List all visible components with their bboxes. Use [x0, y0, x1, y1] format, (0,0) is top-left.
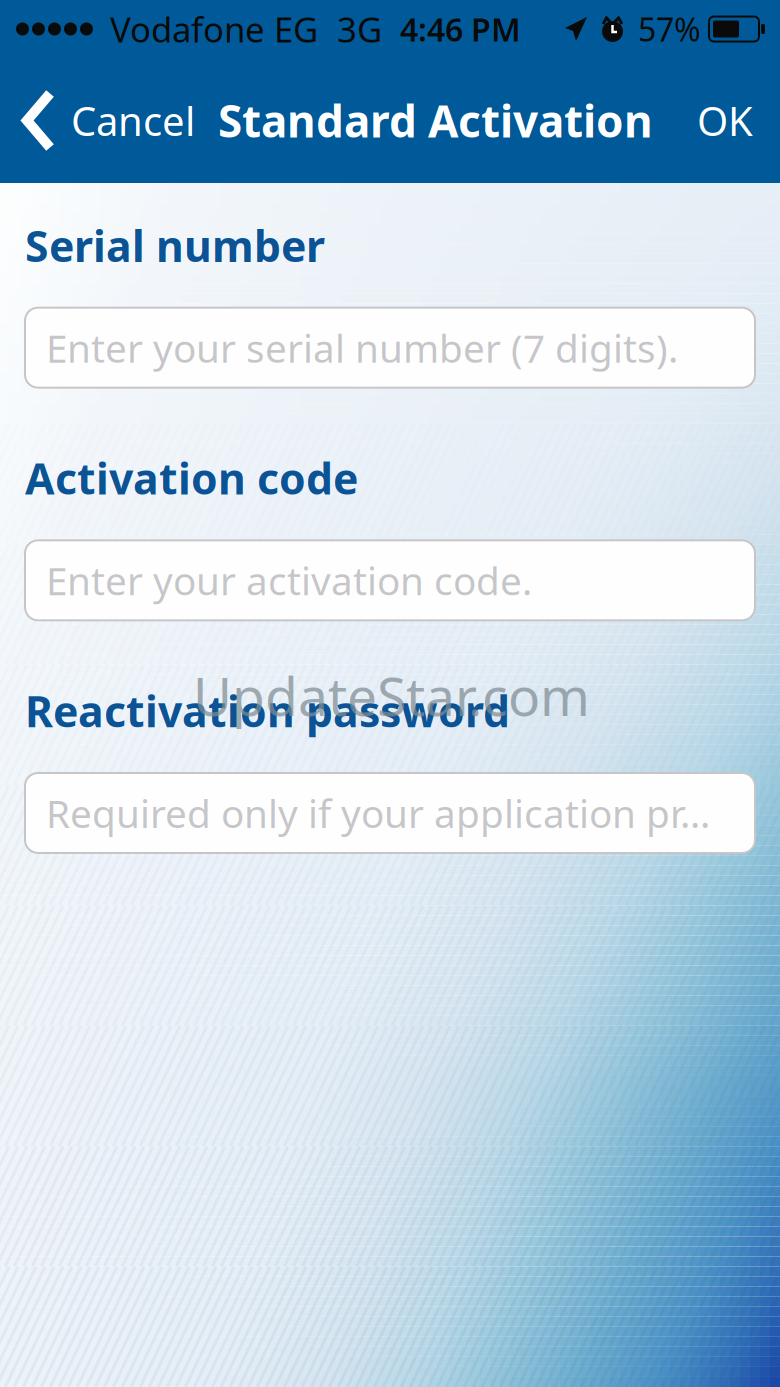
- staticText: Vodafone EG: [110, 6, 318, 52]
- staticText: Reactivation password: [25, 682, 510, 739]
- staticText: Activation code: [25, 450, 358, 506]
- staticText: UpdateStar.com: [193, 660, 590, 731]
- staticText: 57%: [638, 8, 701, 50]
- staticText: 3G: [337, 6, 382, 52]
- staticText: Standard Activation: [218, 91, 653, 150]
- button[interactable]: Enter your activation code.: [25, 540, 755, 620]
- button[interactable]: Enter your serial number (7 digits).: [25, 308, 755, 388]
- button[interactable]: Cancel: [0, 58, 205, 183]
- staticText: OK: [697, 94, 753, 147]
- staticText: Required only if your application pr...: [46, 787, 710, 839]
- button[interactable]: OK: [670, 58, 780, 183]
- staticText: Enter your serial number (7 digits).: [46, 322, 678, 373]
- staticText: Enter your activation code.: [46, 555, 532, 606]
- staticText: Serial number: [25, 217, 325, 274]
- button[interactable]: Required only if your application pr...: [25, 773, 755, 853]
- staticText: 4:46 PM: [400, 8, 521, 50]
- staticText: Cancel: [71, 94, 195, 147]
